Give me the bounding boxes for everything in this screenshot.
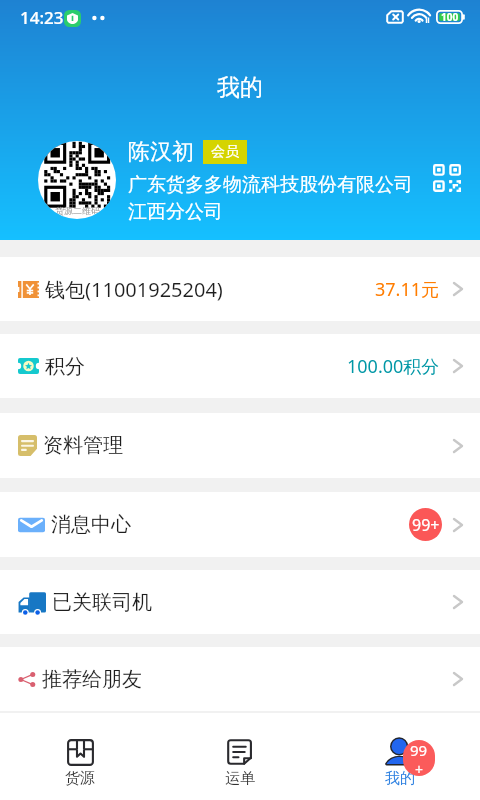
staticText: 已关联司机 [52,590,152,615]
button[interactable]: 已关联司机 [0,570,480,634]
staticText: 消息中心 [51,512,131,537]
staticText: 37.11元 [375,277,440,302]
staticText: 99+ [412,514,440,536]
button[interactable]: 推荐给朋友 [0,647,480,711]
staticText: + [415,760,424,776]
staticText: 我的 [385,769,415,788]
staticText: 会员 [211,143,239,161]
staticText: 钱包(11001925204) [45,276,223,303]
button[interactable]: 运单 [160,713,320,788]
button[interactable]: 消息中心 [0,492,480,557]
staticText: 我的 [217,73,263,102]
button[interactable]: Scan QR code [433,164,461,192]
staticText: 99 [410,740,428,760]
button[interactable]: 积分 [0,334,480,398]
staticText: 货源 [65,769,95,788]
staticText: 100 [441,10,459,24]
staticText: 资料管理 [43,433,123,458]
button[interactable]: 资料管理 [0,413,480,478]
staticText: 陈汉初 [128,138,194,166]
staticText: 14:23 [20,6,64,29]
button[interactable]: 货源 [0,713,160,788]
staticText: 广东货多多物流科技股份有限公司江西分公司 [128,173,420,224]
staticText: 推荐给朋友 [42,667,142,692]
button[interactable]: 钱包(11001925204) [0,257,480,321]
staticText: 积分 [45,354,85,379]
staticText: 货源二维码 [55,205,100,216]
staticText: 运单 [225,769,255,788]
staticText: 100.00积分 [347,354,440,379]
button[interactable]: 我的 [320,713,480,788]
